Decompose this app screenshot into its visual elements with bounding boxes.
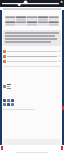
button[interactable]: List item 2 (3, 54, 61, 58)
button[interactable]: Text block (3, 30, 61, 46)
button[interactable]: Media item (3, 83, 61, 90)
button[interactable]: Top app bar (0, 0, 64, 7)
button[interactable]: Shortcuts (3, 99, 61, 106)
button[interactable]: List item 1 (3, 49, 61, 53)
button[interactable]: List item 3 (3, 59, 61, 63)
button[interactable]: Photo grid card (3, 14, 61, 27)
